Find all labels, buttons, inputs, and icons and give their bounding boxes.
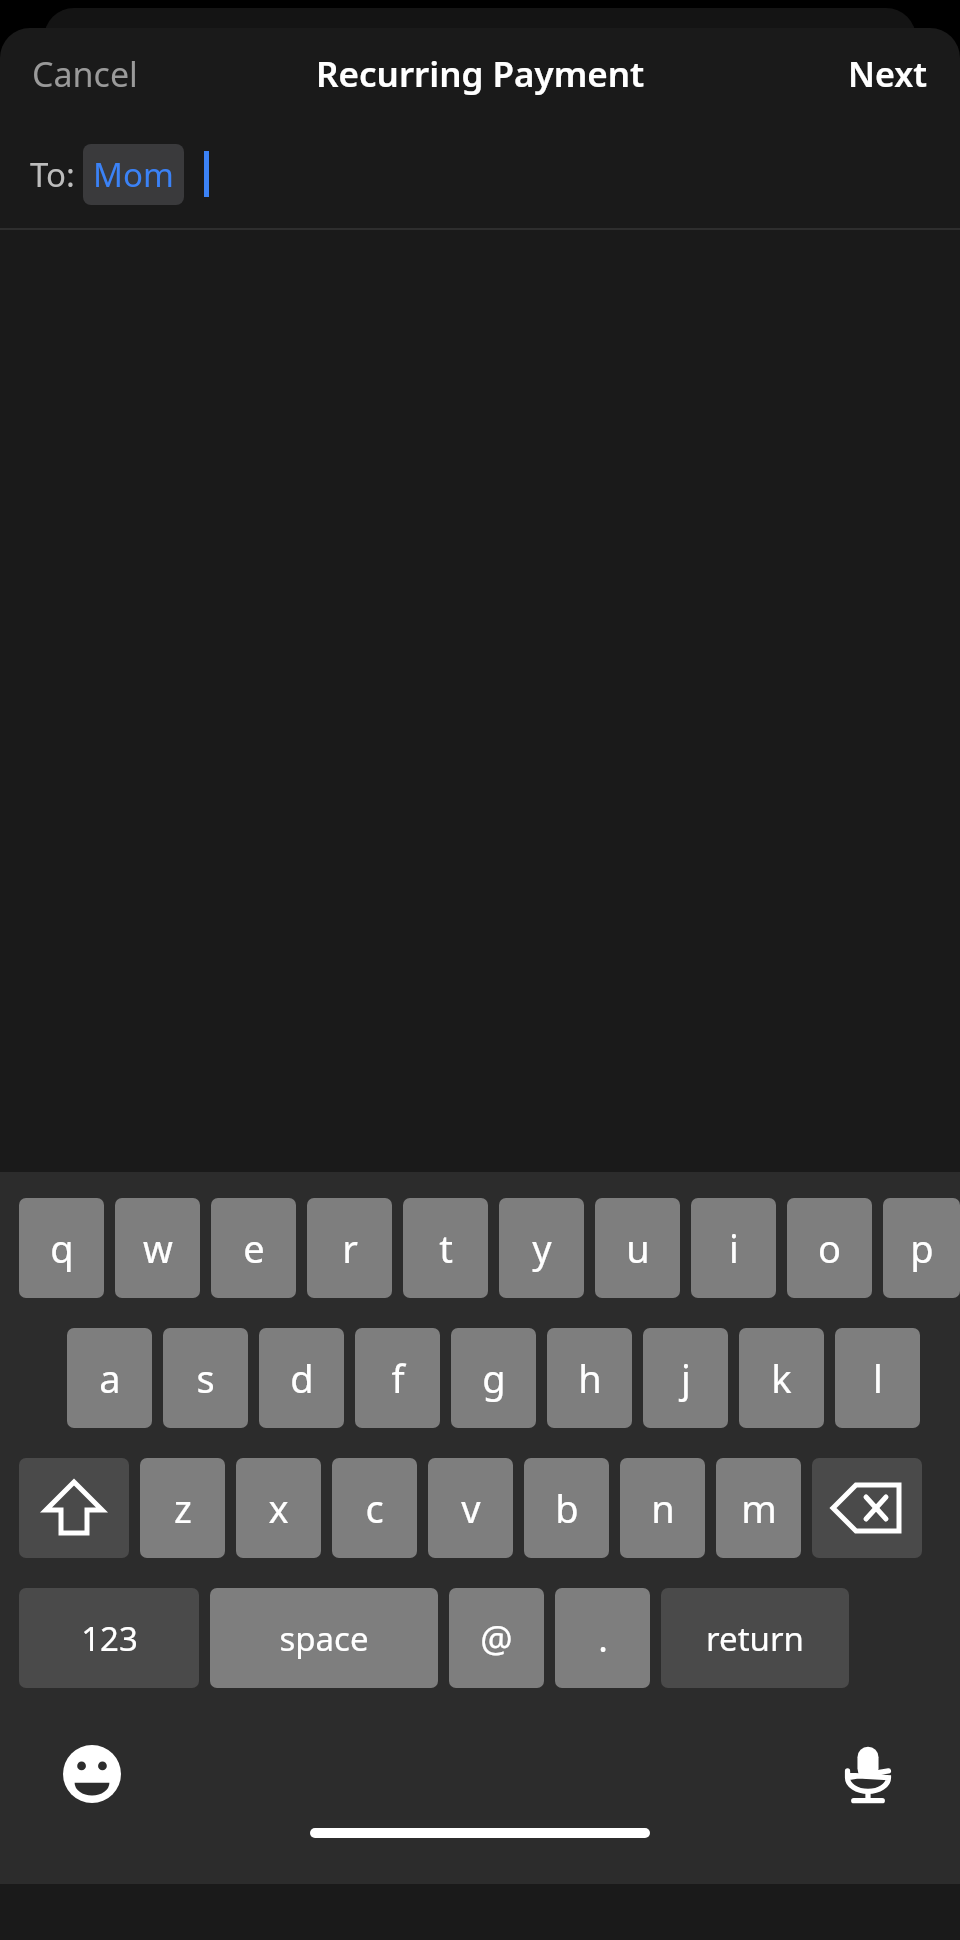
- staticText: d: [290, 1352, 314, 1404]
- button[interactable]: To:: [0, 120, 960, 228]
- staticText: o: [818, 1222, 841, 1274]
- staticText: b: [555, 1482, 579, 1534]
- button[interactable]: u: [595, 1198, 680, 1298]
- button[interactable]: t: [403, 1198, 488, 1298]
- staticText: t: [439, 1222, 453, 1274]
- button[interactable]: Mom: [83, 144, 184, 205]
- staticText: g: [482, 1352, 506, 1404]
- button[interactable]: l: [835, 1328, 920, 1428]
- button[interactable]: g: [451, 1328, 536, 1428]
- staticText: v: [461, 1482, 481, 1534]
- button[interactable]: i: [691, 1198, 776, 1298]
- staticText: h: [578, 1352, 602, 1404]
- button[interactable]: Emoji keyboard: [52, 1734, 132, 1814]
- staticText: 123: [81, 1616, 138, 1661]
- staticText: n: [651, 1482, 675, 1534]
- button[interactable]: Shift: [19, 1458, 129, 1558]
- button[interactable]: space: [210, 1588, 438, 1688]
- staticText: z: [174, 1482, 192, 1534]
- button[interactable]: 123: [19, 1588, 199, 1688]
- staticText: m: [741, 1482, 777, 1534]
- staticText: .: [598, 1614, 608, 1663]
- button[interactable]: m: [716, 1458, 801, 1558]
- button[interactable]: o: [787, 1198, 872, 1298]
- staticText: @: [480, 1614, 513, 1663]
- button[interactable]: c: [332, 1458, 417, 1558]
- button[interactable]: .: [555, 1588, 650, 1688]
- staticText: p: [910, 1222, 934, 1274]
- button[interactable]: w: [115, 1198, 200, 1298]
- button[interactable]: q: [19, 1198, 104, 1298]
- button[interactable]: x: [236, 1458, 321, 1558]
- button[interactable]: p: [883, 1198, 960, 1298]
- button[interactable]: Dictation: [828, 1734, 908, 1814]
- button[interactable]: s: [163, 1328, 248, 1428]
- button[interactable]: j: [643, 1328, 728, 1428]
- staticText: y: [532, 1222, 552, 1274]
- staticText: To:: [30, 152, 75, 197]
- button[interactable]: Cancel: [14, 39, 156, 109]
- staticText: f: [391, 1352, 405, 1404]
- staticText: q: [50, 1222, 74, 1274]
- button[interactable]: y: [499, 1198, 584, 1298]
- button[interactable]: r: [307, 1198, 392, 1298]
- button[interactable]: Next: [830, 39, 946, 109]
- button[interactable]: n: [620, 1458, 705, 1558]
- staticText: w: [143, 1222, 173, 1274]
- staticText: k: [771, 1352, 792, 1404]
- button[interactable]: @: [449, 1588, 544, 1688]
- button[interactable]: b: [524, 1458, 609, 1558]
- staticText: x: [268, 1482, 289, 1534]
- button[interactable]: h: [547, 1328, 632, 1428]
- staticText: Recurring Payment: [316, 50, 645, 98]
- button[interactable]: a: [67, 1328, 152, 1428]
- staticText: s: [196, 1352, 215, 1404]
- button[interactable]: z: [140, 1458, 225, 1558]
- staticText: e: [243, 1222, 265, 1274]
- staticText: u: [626, 1222, 650, 1274]
- button[interactable]: k: [739, 1328, 824, 1428]
- button[interactable]: return: [661, 1588, 849, 1688]
- staticText: Cancel: [32, 51, 138, 97]
- button[interactable]: Backspace: [812, 1458, 922, 1558]
- button[interactable]: f: [355, 1328, 440, 1428]
- staticText: l: [873, 1352, 883, 1404]
- staticText: a: [99, 1352, 121, 1404]
- staticText: return: [706, 1616, 804, 1661]
- button[interactable]: v: [428, 1458, 513, 1558]
- staticText: j: [681, 1352, 691, 1404]
- staticText: space: [279, 1616, 369, 1661]
- staticText: i: [729, 1222, 739, 1274]
- button[interactable]: d: [259, 1328, 344, 1428]
- staticText: r: [342, 1222, 358, 1274]
- staticText: Mom: [93, 152, 174, 197]
- button[interactable]: e: [211, 1198, 296, 1298]
- staticText: c: [365, 1482, 384, 1534]
- staticText: Next: [848, 51, 928, 97]
